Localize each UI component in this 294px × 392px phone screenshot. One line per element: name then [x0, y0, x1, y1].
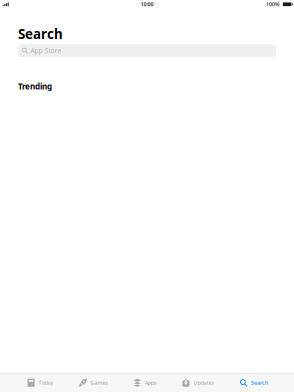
button[interactable]: Updates: [181, 374, 215, 392]
staticText: Games: [90, 379, 108, 386]
button[interactable]: Apps: [132, 374, 158, 392]
button[interactable]: Today: [26, 374, 55, 392]
staticText: Trending: [18, 81, 52, 92]
staticText: 100%: [266, 1, 280, 8]
staticText: Apps: [145, 379, 157, 386]
staticText: Updates: [193, 379, 214, 386]
button[interactable]: Games: [78, 374, 109, 392]
staticText: App Store: [31, 46, 62, 55]
staticText: 10:00: [140, 1, 153, 8]
staticText: Today: [39, 379, 54, 386]
button[interactable]: Search: [238, 374, 269, 392]
staticText: Search: [18, 25, 63, 43]
staticText: Search: [251, 379, 268, 386]
button[interactable]: App Store: [18, 44, 276, 57]
